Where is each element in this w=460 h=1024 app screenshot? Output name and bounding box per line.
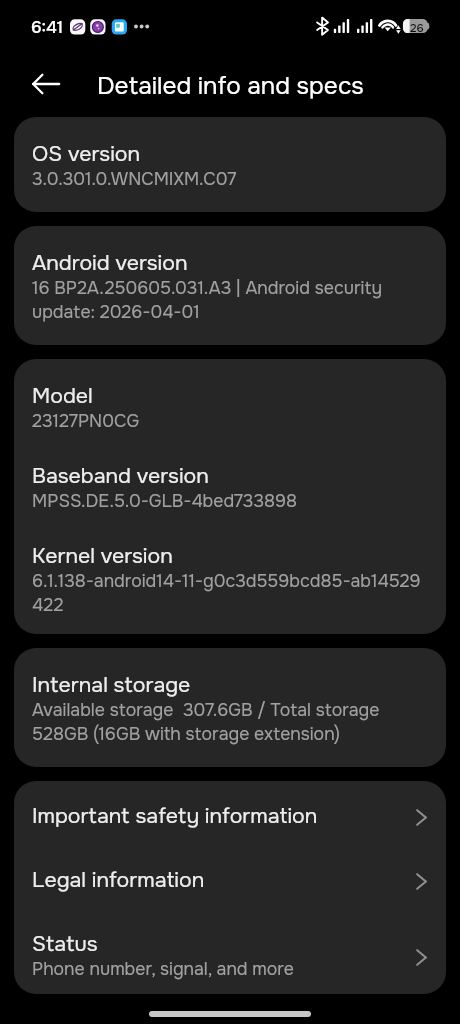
staticText: Model bbox=[32, 385, 93, 409]
staticText: 16 BP2A.250605.031.A3 | Android security… bbox=[32, 276, 430, 324]
staticText: 23127PN0CG bbox=[32, 409, 140, 433]
staticText: 6:41 bbox=[31, 19, 64, 37]
button[interactable]: Status bbox=[14, 913, 446, 994]
staticText: Legal information bbox=[32, 869, 205, 893]
staticText: MPSS.DE.5.0-GLB-4bed733898 bbox=[32, 489, 298, 513]
button[interactable]: Android version bbox=[14, 226, 446, 345]
staticText: Baseband version bbox=[32, 465, 209, 489]
staticText: Internal storage bbox=[32, 674, 191, 698]
staticText: OS version bbox=[32, 143, 141, 167]
button[interactable]: OS version bbox=[14, 117, 446, 212]
staticText: 6.1.138-android14-11-g0c3d559bcd85-ab145… bbox=[32, 569, 421, 617]
staticText: Important safety information bbox=[32, 805, 318, 829]
staticText: Android version bbox=[32, 252, 188, 276]
button[interactable]: Model bbox=[14, 359, 446, 634]
button[interactable]: Internal storage bbox=[14, 648, 446, 767]
button[interactable]: Legal information bbox=[14, 849, 446, 913]
staticText: Detailed info and specs bbox=[97, 73, 364, 101]
staticText: Available storage 307.6GB / Total storag… bbox=[32, 698, 430, 746]
staticText: 26 bbox=[410, 21, 424, 35]
staticText: Status bbox=[32, 933, 98, 957]
staticText: 3.0.301.0.WNCMIXM.C07 bbox=[32, 167, 237, 191]
button[interactable]: Important safety information bbox=[14, 781, 446, 849]
staticText: Kernel version bbox=[32, 545, 173, 569]
button[interactable]: Navigate up bbox=[22, 64, 70, 103]
staticText: Phone number, signal, and more bbox=[32, 957, 294, 981]
